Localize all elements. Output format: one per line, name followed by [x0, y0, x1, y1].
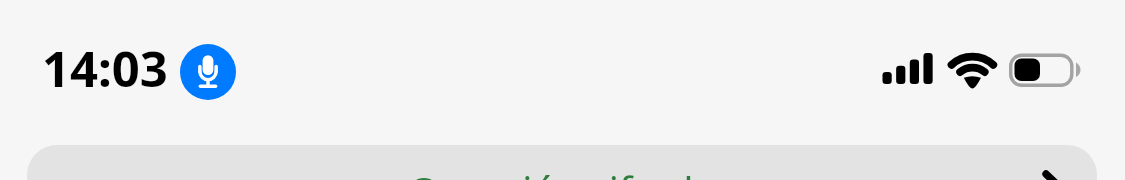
other: Battery 45 percent: [1009, 53, 1085, 87]
staticText: Conexión cifrada: [408, 163, 716, 180]
staticText: 14:03: [42, 35, 168, 102]
button[interactable]: Conexión cifrada: [27, 145, 1097, 180]
other: Wi-Fi: [944, 50, 1000, 90]
other: Cellular signal: [882, 52, 934, 86]
button[interactable]: Microphone active: [180, 44, 236, 100]
